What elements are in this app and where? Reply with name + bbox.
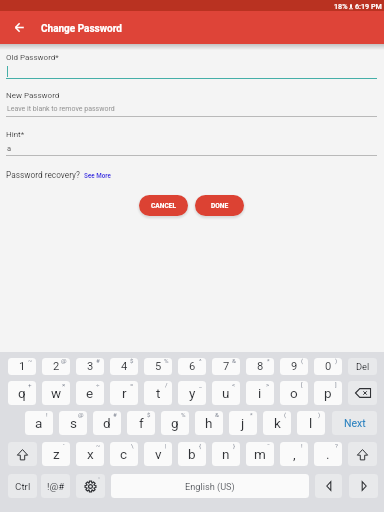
button[interactable]: 1 [8, 358, 36, 375]
button[interactable]: 3 [76, 358, 104, 375]
staticText: × [62, 381, 66, 388]
staticText: 2 [53, 360, 60, 373]
button[interactable]: 8 [246, 358, 274, 375]
staticText: z [53, 446, 60, 462]
staticText: h [205, 415, 213, 431]
staticText: ) [318, 411, 321, 418]
button[interactable]: o [280, 381, 308, 405]
staticText: i [258, 385, 262, 401]
button[interactable]: 2 [42, 358, 70, 375]
button[interactable]: 7 [212, 358, 240, 375]
staticText: + [28, 381, 32, 388]
button[interactable]: Shift [8, 442, 37, 466]
staticText: # [113, 411, 117, 418]
button[interactable]: DONE [195, 195, 244, 216]
staticText: ` [63, 442, 65, 449]
button[interactable]: b [178, 442, 206, 466]
button[interactable]: 5 [144, 358, 172, 375]
staticText: _ [199, 381, 202, 388]
staticText: a [35, 415, 43, 431]
staticText: g [171, 415, 179, 431]
staticText: s [70, 415, 77, 431]
button[interactable]: a [25, 411, 53, 435]
staticText: 6 [189, 360, 196, 373]
staticText: $ [130, 358, 134, 364]
staticText: English (US) [185, 481, 235, 492]
staticText: > [266, 381, 270, 388]
staticText: b [188, 446, 196, 462]
button[interactable]: 0 [314, 358, 342, 375]
button[interactable]: Settings [76, 474, 105, 498]
staticText: @ [78, 411, 84, 418]
button[interactable]: h [195, 411, 223, 435]
staticText: u [222, 385, 230, 401]
staticText: 4 [121, 360, 128, 373]
button[interactable]: Back [8, 16, 30, 38]
staticText: ¯ [267, 442, 270, 449]
staticText: ˚ [98, 476, 101, 483]
button[interactable]: Del [348, 358, 377, 375]
button[interactable]: v [144, 442, 172, 466]
staticText: ~ [28, 358, 33, 364]
staticText: See More [84, 172, 111, 179]
button[interactable]: Ctrl [8, 474, 37, 498]
button[interactable]: English (US) [111, 474, 309, 498]
staticText: @ [61, 358, 67, 364]
staticText: ? [335, 442, 338, 449]
staticText: l [309, 415, 313, 431]
staticText: w [51, 385, 62, 401]
button[interactable]: q [8, 381, 36, 405]
button[interactable]: j [229, 411, 257, 435]
button[interactable]: u [212, 381, 240, 405]
button[interactable]: e [76, 381, 104, 405]
button[interactable]: t [144, 381, 172, 405]
button[interactable]: , [280, 442, 308, 466]
button[interactable]: 6 [178, 358, 206, 375]
button[interactable]: s [59, 411, 87, 435]
button[interactable]: z [42, 442, 70, 466]
button[interactable]: Next [332, 411, 377, 435]
staticText: < [232, 381, 236, 388]
button[interactable]: 4 [110, 358, 138, 375]
button[interactable]: Next page [349, 474, 378, 498]
button[interactable]: m [246, 442, 274, 466]
staticText: y [189, 385, 196, 401]
button[interactable]: 9 [280, 358, 308, 375]
button[interactable]: y [178, 381, 206, 405]
button[interactable]: !@# [41, 474, 70, 498]
button[interactable]: x [76, 442, 104, 466]
button[interactable]: i [246, 381, 274, 405]
staticText: 6:19 PM [355, 2, 382, 10]
staticText: e [86, 385, 94, 401]
button[interactable]: . [314, 442, 342, 466]
button[interactable]: Shift [348, 442, 377, 466]
staticText: 18% [334, 2, 348, 10]
staticText: * [267, 358, 270, 364]
button[interactable]: d [93, 411, 121, 435]
staticText: ) [335, 358, 338, 364]
button[interactable]: CANCEL [139, 195, 188, 216]
button[interactable]: Previous [315, 474, 342, 498]
button[interactable]: k [263, 411, 291, 435]
button[interactable]: g [161, 411, 189, 435]
button[interactable]: r [110, 381, 138, 405]
button[interactable]: w [42, 381, 70, 405]
button[interactable]: See More [84, 172, 111, 179]
staticText: o [290, 385, 298, 401]
staticText: ! [301, 442, 303, 449]
button[interactable]: l [297, 411, 325, 435]
staticText: c [120, 446, 128, 462]
staticText: t [156, 385, 161, 401]
staticText: } [233, 442, 236, 449]
button[interactable]: Backspace [348, 381, 377, 405]
staticText: / [165, 381, 168, 388]
button[interactable]: n [212, 442, 240, 466]
staticText: a [7, 144, 12, 153]
staticText: # [96, 358, 100, 364]
button[interactable]: c [110, 442, 138, 466]
button[interactable]: p [314, 381, 342, 405]
staticText: m [254, 446, 266, 462]
staticText: Del [356, 361, 370, 372]
staticText: !@# [47, 481, 65, 492]
button[interactable]: f [127, 411, 155, 435]
